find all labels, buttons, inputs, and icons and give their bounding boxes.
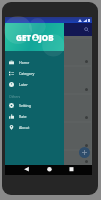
staticText: Home <box>19 60 30 65</box>
staticText: Later <box>19 82 28 87</box>
button[interactable]: Category <box>5 68 64 78</box>
button[interactable]: Add job <box>79 147 90 158</box>
button[interactable]: Search <box>84 27 89 32</box>
button[interactable]: Later <box>5 79 64 89</box>
staticText: JOB <box>39 32 54 43</box>
staticText: About <box>19 125 30 130</box>
button[interactable]: About <box>5 122 64 132</box>
button[interactable] <box>6 67 91 93</box>
staticText: Others <box>9 94 21 99</box>
button[interactable]: Back <box>5 165 34 175</box>
staticText: Category <box>19 71 35 76</box>
button[interactable] <box>6 39 91 65</box>
staticText: Get Job <box>16 26 34 33</box>
button[interactable]: Setting <box>5 100 64 110</box>
button[interactable]: Rate <box>5 111 64 121</box>
staticText: Rate <box>19 114 27 119</box>
staticText: Setting <box>19 103 31 108</box>
button[interactable] <box>6 123 91 149</box>
staticText: GET <box>16 32 32 43</box>
button[interactable] <box>6 151 91 165</box>
button[interactable]: Home <box>5 57 64 67</box>
button[interactable] <box>6 95 91 121</box>
